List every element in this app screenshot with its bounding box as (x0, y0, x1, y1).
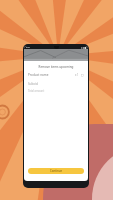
staticText: 9:41 (26, 46, 31, 49)
staticText: Subtotal (28, 82, 39, 86)
button[interactable]: Continue (28, 168, 84, 174)
other: Delete item (81, 74, 84, 77)
staticText: Total amount (28, 89, 45, 93)
staticText: Product name (28, 73, 49, 77)
staticText: x 1 (75, 73, 79, 77)
staticText: Remove items upcoming (24, 65, 88, 69)
button[interactable]: Product name (28, 73, 84, 77)
staticText: Continue (50, 169, 63, 173)
